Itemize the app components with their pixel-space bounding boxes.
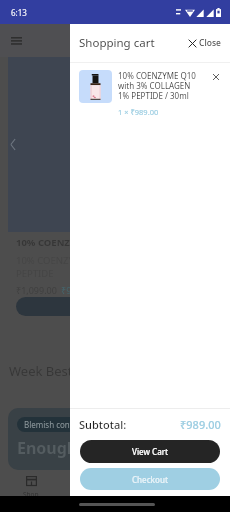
staticText: ₹989.00 <box>61 284 95 296</box>
staticText: Shop <box>147 490 163 499</box>
staticText: Blemish control <box>24 419 83 430</box>
staticText: 6:13 <box>11 7 27 18</box>
staticText: Week Bestsellers <box>9 362 112 380</box>
staticText: Checkout <box>132 474 169 485</box>
button[interactable]: Shop <box>62 476 124 499</box>
staticText: Enough Water <box>17 437 130 459</box>
button[interactable]: Remove item <box>209 70 223 84</box>
staticText: View Cart <box>132 446 169 457</box>
staticText: 10% COENZYME Q10 with 3% COLLAGEN 1% PEP… <box>118 70 196 101</box>
staticText: Subtotal: <box>79 417 127 432</box>
staticText: Shopping cart <box>79 35 155 51</box>
staticText: ₹1,099.00 <box>16 284 57 296</box>
button[interactable]: Menu <box>6 31 26 51</box>
staticText: 10% COENZYME Q10 WITH 3% COLLAGEN 1% PEP… <box>16 254 218 280</box>
staticText: 10% COENZYME Q10 <box>16 236 111 249</box>
staticText: Shop <box>23 490 39 499</box>
button[interactable]: View Cart <box>80 440 220 463</box>
button[interactable]: Close <box>179 29 230 57</box>
staticText: Shop <box>85 490 101 499</box>
button[interactable]: Shop <box>186 476 230 499</box>
staticText: Shop <box>200 490 216 499</box>
button[interactable]: Shop <box>0 476 62 499</box>
staticText: ₹989.00 <box>180 417 221 432</box>
staticText: 1 × ₹989.00 <box>118 107 159 117</box>
button[interactable] <box>16 297 214 316</box>
button[interactable]: Checkout <box>80 468 220 490</box>
staticText: Close <box>199 37 221 49</box>
button[interactable]: Shop <box>124 476 186 499</box>
